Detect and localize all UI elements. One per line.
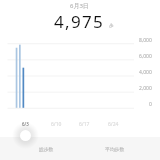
staticText: 6月3日: [70, 2, 89, 10]
button[interactable]: 総歩数: [26, 137, 66, 160]
staticText: 歩: [109, 23, 114, 29]
button[interactable]: Selected day handle: [20, 130, 31, 141]
staticText: 2,000: [139, 85, 152, 92]
button[interactable]: 平均歩数: [95, 137, 135, 160]
staticText: 8,000: [139, 37, 152, 44]
staticText: 6/17: [79, 121, 90, 128]
staticText: 平均歩数: [105, 146, 125, 152]
staticText: 6/3: [22, 121, 29, 127]
staticText: 4,000: [139, 69, 152, 76]
staticText: 6/10: [51, 121, 62, 128]
staticText: 0: [149, 101, 152, 108]
staticText: 6/24: [108, 121, 119, 128]
staticText: 4,975: [54, 10, 104, 33]
staticText: 総歩数: [39, 146, 54, 152]
staticText: 6,000: [139, 53, 152, 60]
